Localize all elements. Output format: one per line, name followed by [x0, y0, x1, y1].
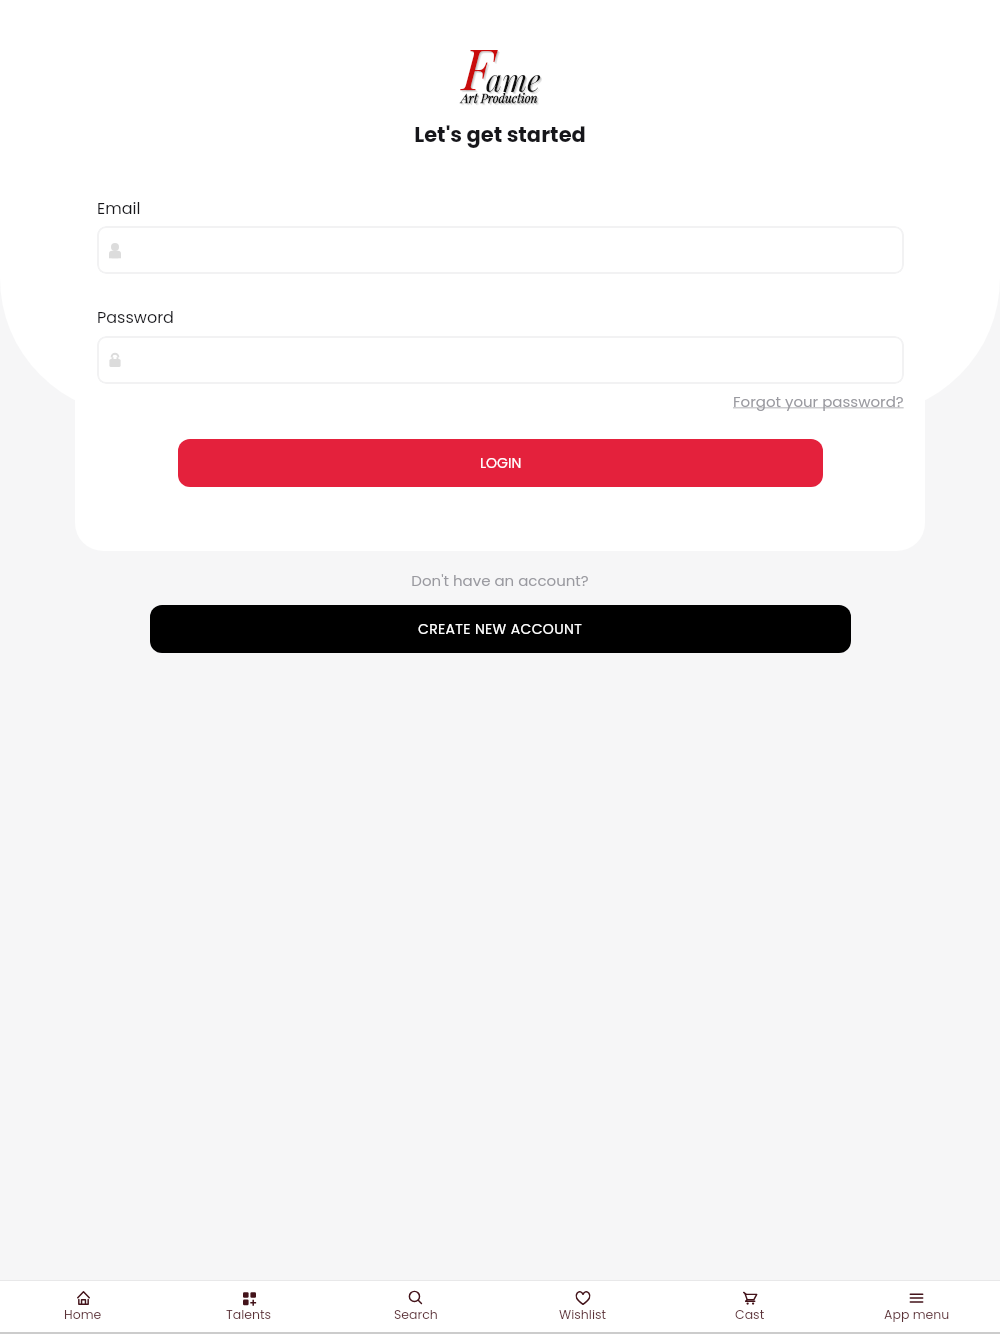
staticText: CREATE NEW ACCOUNT [418, 619, 583, 639]
staticText: Art Production [461, 90, 538, 106]
button[interactable]: Search [332, 1281, 499, 1332]
button[interactable]: LOGIN [178, 439, 823, 487]
staticText: ame [488, 60, 543, 101]
button[interactable]: CREATE NEW ACCOUNT [150, 605, 851, 653]
button[interactable]: Wishlist [499, 1281, 666, 1332]
staticText: Search [394, 1306, 438, 1323]
other: App menu [910, 1291, 923, 1305]
button[interactable]: Cast [666, 1281, 833, 1332]
other: Search [409, 1291, 422, 1304]
other: Home [77, 1291, 90, 1305]
staticText: Don't have an account? [0, 570, 1000, 591]
staticText: F [463, 30, 495, 105]
button[interactable]: Home [0, 1281, 166, 1332]
button[interactable]: Forgot your password? [733, 391, 904, 412]
staticText: Art Production [462, 91, 539, 107]
staticText: Let's get started [0, 120, 1000, 149]
staticText: Password [97, 306, 174, 328]
staticText: ame [487, 59, 542, 100]
button[interactable]: Email [97, 226, 904, 274]
staticText: LOGIN [480, 453, 522, 473]
other: Cast [743, 1291, 757, 1305]
staticText: ame [486, 58, 541, 99]
button[interactable]: Talents [166, 1281, 332, 1332]
button[interactable]: App menu [833, 1281, 1000, 1332]
staticText: Wishlist [559, 1306, 607, 1323]
staticText: F [462, 29, 494, 104]
staticText: Email [97, 197, 141, 219]
staticText: Home [64, 1306, 102, 1323]
staticText: Forgot your password? [733, 391, 904, 412]
staticText: Talents [226, 1306, 272, 1323]
button[interactable]: Password [97, 336, 904, 384]
staticText: Art Production [463, 92, 540, 108]
staticText: App menu [884, 1306, 950, 1323]
other: Talents [243, 1291, 256, 1305]
staticText: Cast [735, 1306, 765, 1323]
other: Wishlist [575, 1291, 591, 1305]
staticText: F [464, 31, 496, 106]
